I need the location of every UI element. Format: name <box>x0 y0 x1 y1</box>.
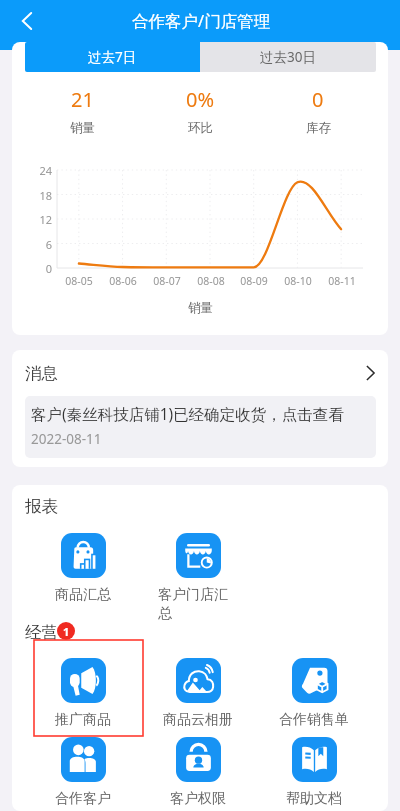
staticText: 环比 <box>188 120 213 136</box>
staticText: 过去7日 <box>88 48 137 66</box>
staticText: 08-09 <box>232 274 276 288</box>
button[interactable]: 合作销售单 <box>274 658 354 729</box>
button[interactable]: 过去30日 <box>200 42 376 72</box>
staticText: 库存 <box>306 120 331 136</box>
button[interactable]: 推广商品 <box>43 658 123 729</box>
button[interactable]: 商品云相册 <box>158 658 238 729</box>
staticText: 12 <box>28 212 52 227</box>
staticText: 08-10 <box>276 274 320 288</box>
staticText: 消息 <box>25 363 58 384</box>
staticText: 08-06 <box>101 274 145 288</box>
button[interactable]: 客户权限 <box>158 737 238 808</box>
staticText: 合作销售单 <box>279 711 349 729</box>
staticText: 客户门店汇总 <box>158 586 238 622</box>
staticText: 合作客户/门店管理 <box>132 9 271 32</box>
staticText: 合作客户 <box>55 790 111 808</box>
staticText: 商品汇总 <box>55 586 111 604</box>
button[interactable]: 过去7日 <box>25 42 200 72</box>
staticText: 08-11 <box>320 274 364 288</box>
button[interactable]: Back <box>8 3 46 39</box>
staticText: 客户(秦丝科技店铺1)已经确定收货，点击查看 <box>31 403 344 424</box>
staticText: 08-05 <box>57 274 101 288</box>
staticText: 推广商品 <box>55 711 111 729</box>
button[interactable]: 合作客户 <box>43 737 123 808</box>
staticText: 1 <box>63 624 70 639</box>
staticText: 报表 <box>25 496 58 517</box>
staticText: 0% <box>186 86 215 113</box>
staticText: 销量 <box>188 300 213 316</box>
button[interactable]: 客户(秦丝科技店铺1)已经确定收货，点击查看 <box>25 396 376 458</box>
staticText: 18 <box>28 188 52 203</box>
staticText: 商品云相册 <box>163 711 233 729</box>
staticText: 客户权限 <box>170 790 226 808</box>
button[interactable]: 消息 <box>25 350 375 396</box>
staticText: 08-08 <box>189 274 233 288</box>
staticText: 0 <box>312 86 324 113</box>
staticText: 6 <box>28 237 52 252</box>
staticText: 2022-08-11 <box>31 430 102 448</box>
staticText: 过去30日 <box>260 48 316 66</box>
staticText: 0 <box>28 261 52 276</box>
button[interactable]: 客户门店汇总 <box>158 533 238 622</box>
staticText: 24 <box>28 163 52 178</box>
staticText: 帮助文档 <box>286 790 342 808</box>
staticText: 经营 <box>25 622 58 643</box>
button[interactable]: 帮助文档 <box>274 737 354 808</box>
staticText: 销量 <box>70 120 95 136</box>
button[interactable]: 商品汇总 <box>43 533 123 604</box>
staticText: 08-07 <box>145 274 189 288</box>
staticText: 21 <box>71 86 94 113</box>
